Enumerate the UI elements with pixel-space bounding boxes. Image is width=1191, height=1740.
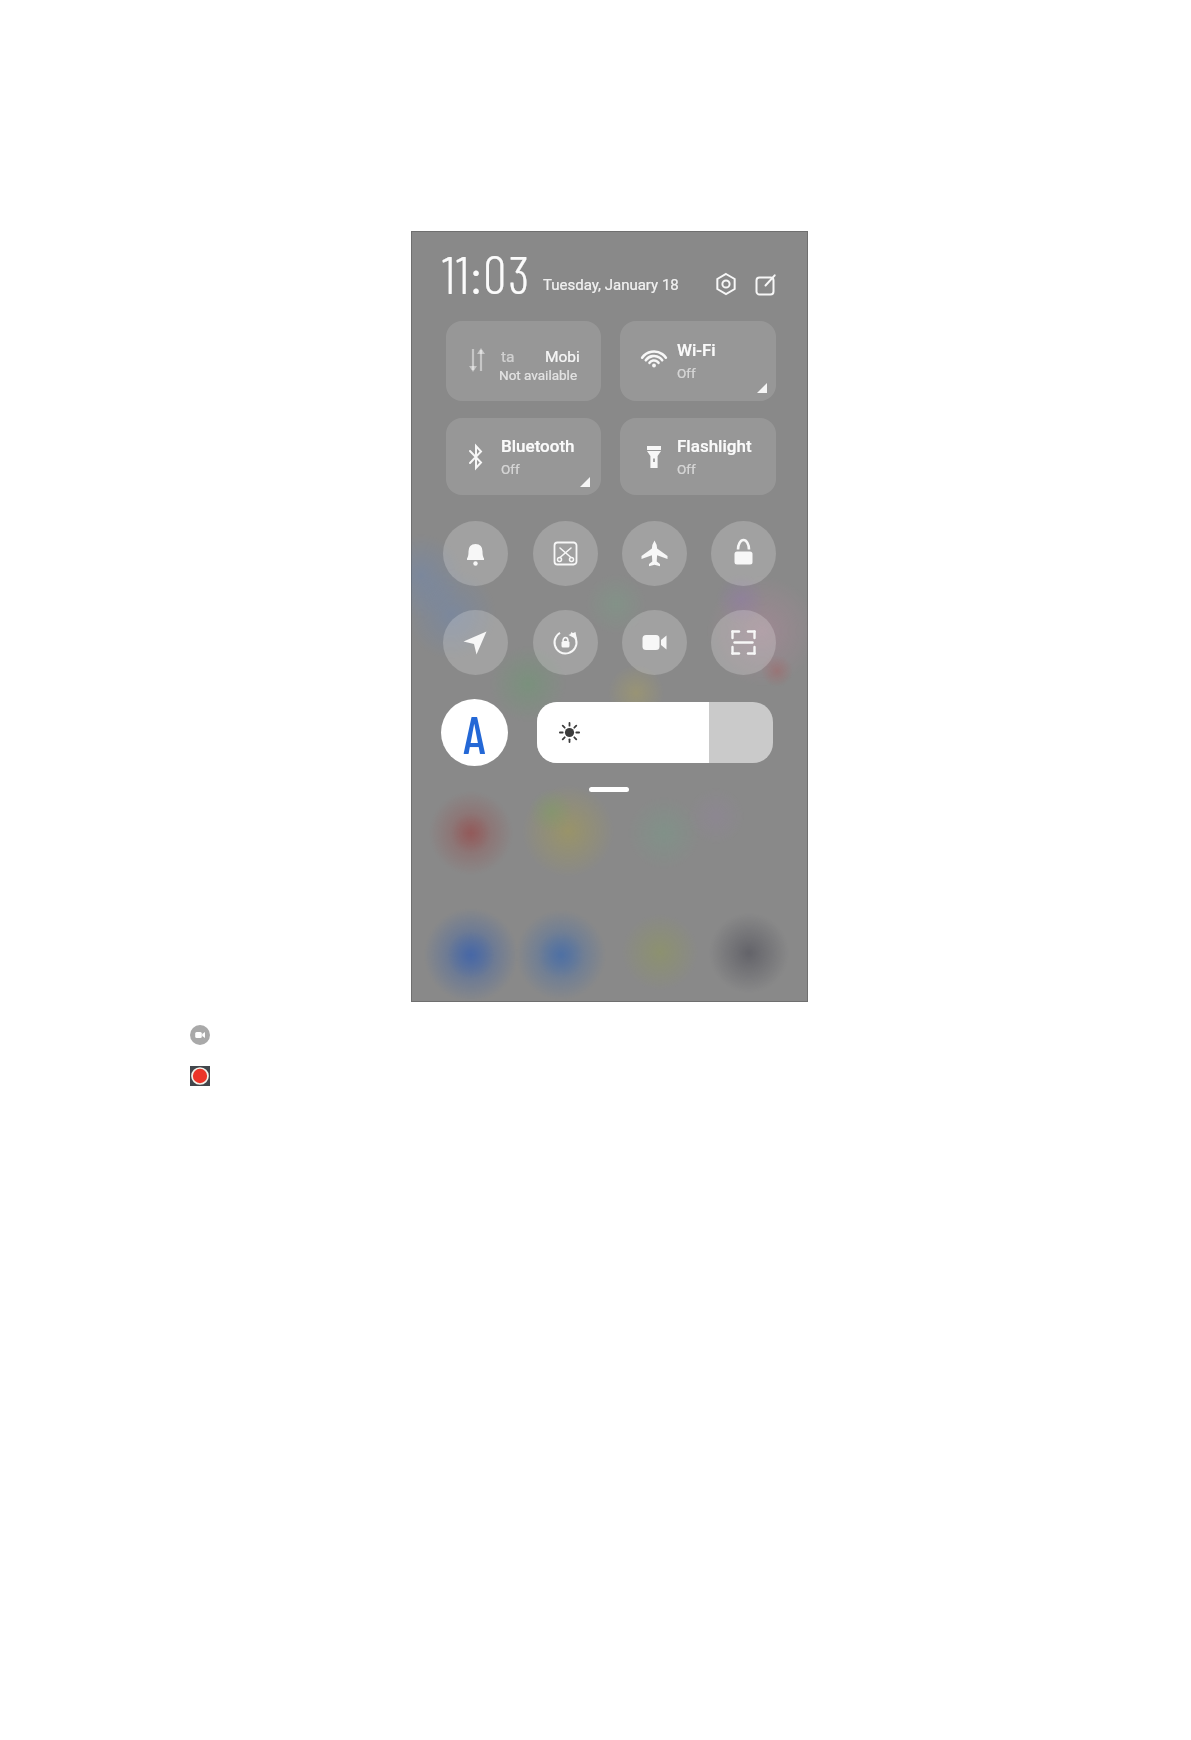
staticText: Wi-Fi	[677, 340, 716, 360]
button[interactable]	[190, 1025, 210, 1045]
staticText: Tuesday, January 18	[543, 276, 679, 294]
staticText: Off	[677, 461, 696, 477]
button[interactable]	[711, 521, 776, 586]
staticText: Bluetooth	[501, 436, 575, 456]
button[interactable]: A	[441, 699, 508, 766]
button[interactable]	[537, 702, 773, 763]
staticText: Off	[501, 461, 520, 477]
staticText: Mobi	[545, 348, 580, 366]
button[interactable]	[620, 418, 776, 495]
staticText: 11:03	[442, 242, 532, 304]
button[interactable]	[533, 521, 598, 586]
button[interactable]	[622, 521, 687, 586]
button[interactable]	[446, 418, 601, 495]
button[interactable]	[533, 610, 598, 675]
button[interactable]	[443, 610, 508, 675]
button[interactable]	[190, 1066, 210, 1086]
staticText: Flashlight	[677, 436, 752, 456]
button[interactable]	[622, 610, 687, 675]
button[interactable]	[620, 321, 776, 401]
button[interactable]	[711, 610, 776, 675]
button[interactable]	[443, 521, 508, 586]
staticText: Not available	[499, 367, 578, 383]
button[interactable]	[446, 321, 601, 401]
staticText: Off	[677, 365, 696, 381]
staticText: ta	[501, 348, 515, 366]
staticText: A	[463, 702, 486, 764]
